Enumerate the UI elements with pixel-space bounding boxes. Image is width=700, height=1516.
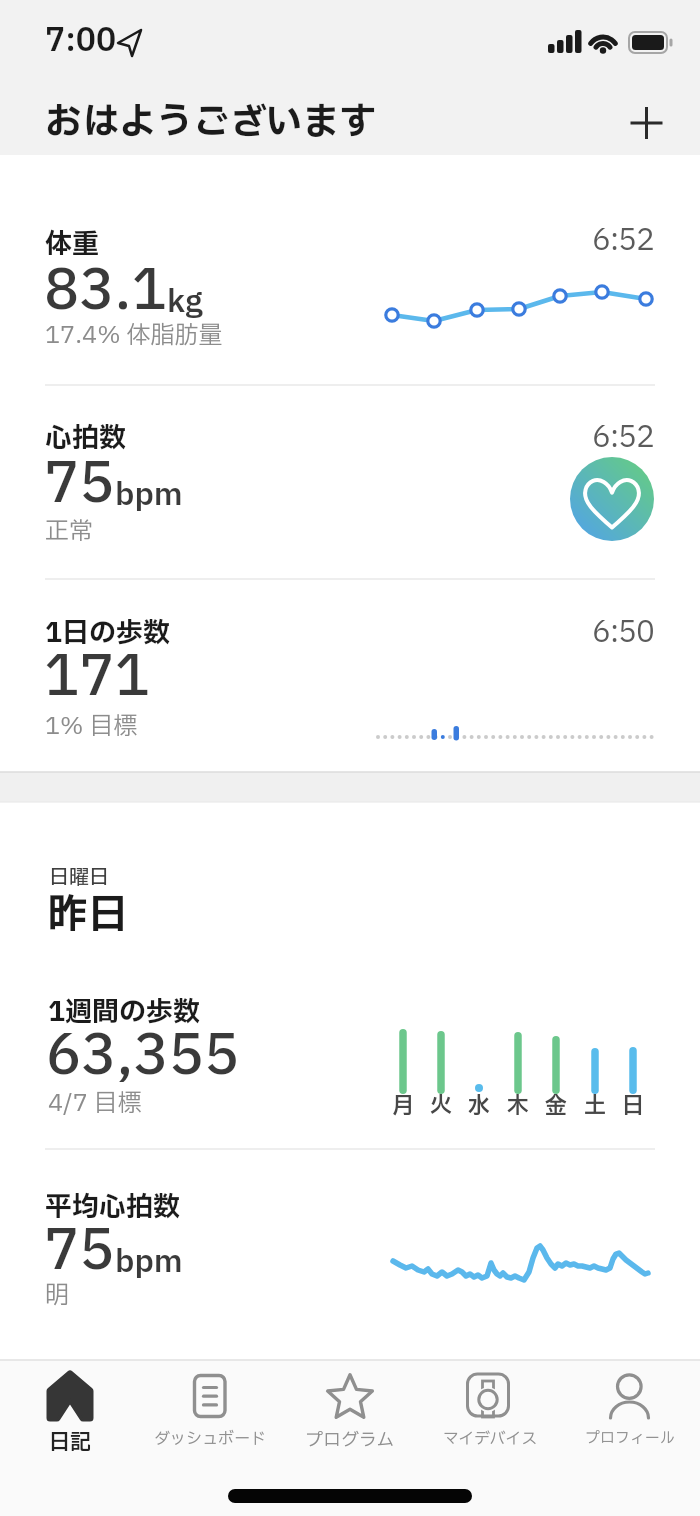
staticText: 75 bbox=[44, 1210, 115, 1294]
staticText: ダッシュボード bbox=[154, 1427, 267, 1451]
staticText: プロフィール bbox=[585, 1427, 676, 1449]
staticText: 17.4% 体脂肪量 bbox=[45, 318, 223, 354]
staticText: 水 bbox=[468, 1090, 491, 1123]
staticText: 7:00 bbox=[45, 17, 117, 65]
staticText: 正常 bbox=[45, 514, 93, 550]
staticText: 83.1 bbox=[44, 250, 167, 334]
button[interactable]: 体重 bbox=[0, 155, 700, 385]
button[interactable]: 1週間の歩数 bbox=[0, 975, 700, 1149]
button[interactable]: 日記 bbox=[0, 1360, 140, 1460]
staticText: 金 bbox=[545, 1090, 568, 1123]
staticText: 1週間の歩数 bbox=[48, 992, 201, 1032]
staticText: おはようございます bbox=[45, 95, 377, 150]
staticText: 土 bbox=[584, 1090, 607, 1123]
staticText: 1日の歩数 bbox=[45, 613, 171, 653]
staticText: 171 bbox=[44, 636, 150, 720]
staticText: bpm bbox=[115, 472, 183, 518]
button[interactable]: ダッシュボード bbox=[140, 1360, 280, 1460]
staticText: 平均心拍数 bbox=[45, 1187, 180, 1227]
staticText: 木 bbox=[507, 1090, 530, 1123]
staticText: 月 bbox=[392, 1090, 415, 1123]
staticText: 75 bbox=[44, 443, 115, 527]
button[interactable]: 1日の歩数 bbox=[0, 579, 700, 772]
staticText: マイデバイス bbox=[443, 1427, 538, 1451]
button[interactable]: 平均心拍数 bbox=[0, 1149, 700, 1349]
staticText: 昨日 bbox=[48, 886, 128, 946]
staticText: 6:50 bbox=[592, 610, 654, 655]
button[interactable]: プロフィール bbox=[560, 1360, 700, 1460]
button[interactable] bbox=[620, 97, 672, 149]
button[interactable]: マイデバイス bbox=[420, 1360, 560, 1460]
button[interactable]: 心拍数 bbox=[0, 385, 700, 579]
staticText: 日 bbox=[622, 1090, 645, 1123]
staticText: 日記 bbox=[49, 1427, 91, 1458]
staticText: 火 bbox=[430, 1090, 453, 1123]
staticText: 体重 bbox=[45, 224, 99, 264]
staticText: 63,355 bbox=[46, 1015, 240, 1099]
staticText: 日曜日 bbox=[49, 863, 109, 893]
staticText: プログラム bbox=[305, 1427, 395, 1454]
staticText: 6:52 bbox=[592, 415, 654, 460]
staticText: bpm bbox=[115, 1239, 183, 1285]
button[interactable]: プログラム bbox=[280, 1360, 420, 1460]
staticText: 心拍数 bbox=[45, 418, 126, 458]
staticText: 1% 目標 bbox=[45, 709, 138, 745]
staticText: 6:52 bbox=[592, 218, 654, 263]
staticText: 4/7 目標 bbox=[48, 1086, 142, 1122]
staticText: kg bbox=[167, 279, 203, 325]
staticText: 明 bbox=[45, 1278, 69, 1314]
